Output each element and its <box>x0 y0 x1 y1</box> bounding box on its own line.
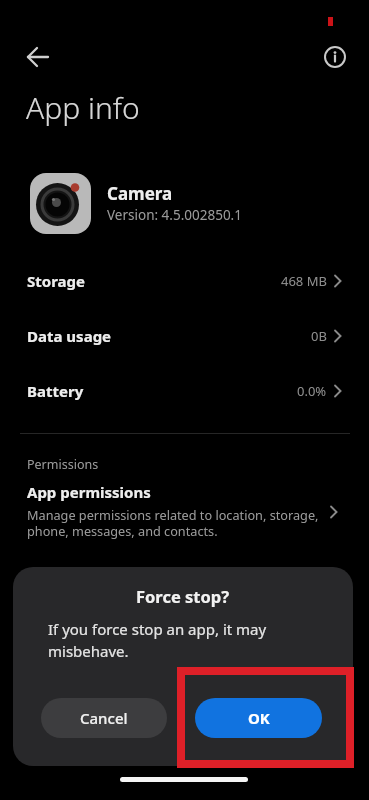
staticText: Version: 4.5.002850.1 <box>107 206 242 224</box>
staticText: Camera <box>107 182 173 205</box>
staticText: If you force stop an app, it may misbeha… <box>48 619 267 662</box>
staticText: Cancel <box>80 708 128 728</box>
staticText: Force stop? <box>136 585 230 607</box>
button[interactable]: Storage <box>0 253 369 308</box>
button[interactable]: Cancel <box>41 698 167 738</box>
staticText: Permissions <box>27 456 99 473</box>
staticText: Battery <box>27 381 84 401</box>
button[interactable]: Data usage <box>0 308 369 363</box>
button[interactable]: OK <box>195 698 322 738</box>
staticText: 0.0% <box>297 382 327 400</box>
button[interactable]: App permissions <box>0 474 369 550</box>
staticText: Data usage <box>27 326 112 346</box>
staticText: Storage <box>27 271 85 291</box>
button[interactable]: Battery <box>0 363 369 418</box>
staticText: App info <box>26 87 140 128</box>
staticText: 0B <box>311 327 327 345</box>
staticText: Manage permissions related to location, … <box>27 506 319 540</box>
staticText: 468 MB <box>281 272 327 290</box>
button[interactable] <box>318 42 352 72</box>
staticText: App permissions <box>27 482 151 502</box>
staticText: OK <box>248 708 270 728</box>
button[interactable] <box>16 42 60 72</box>
